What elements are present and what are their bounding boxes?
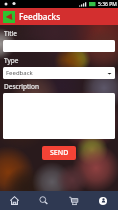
button[interactable]: Account [88,191,118,210]
staticText: 5:36 PM [98,1,117,8]
staticText: Feedback [6,69,33,77]
staticText: Type [4,56,19,65]
button[interactable] [3,40,115,52]
button[interactable]: Home [0,191,29,210]
staticText: Feedbacks [19,11,61,22]
button[interactable]: Search [29,191,58,210]
button[interactable]: Cart [58,191,88,210]
staticText: Description [4,82,39,91]
staticText: SEND [50,148,69,158]
staticText: Title [4,29,17,38]
button[interactable]: Feedback [3,67,115,79]
button[interactable]: SEND [42,146,76,160]
